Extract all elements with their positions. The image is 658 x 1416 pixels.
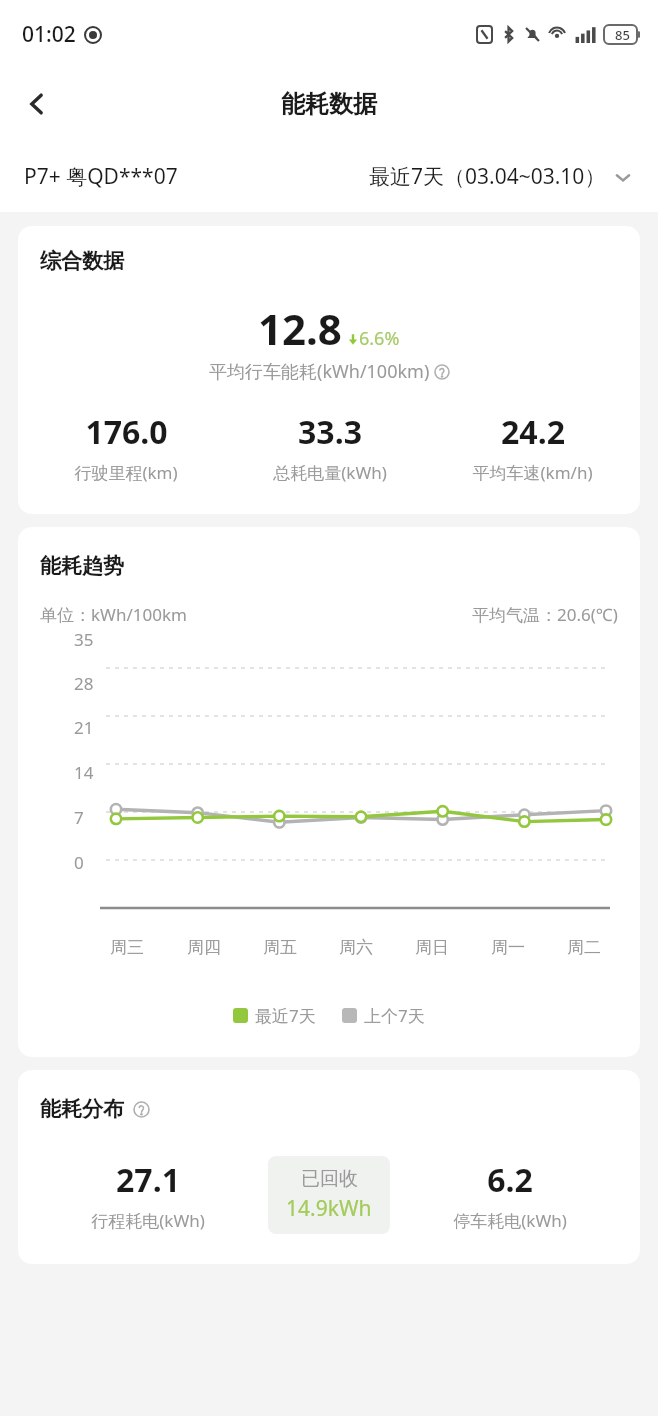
button[interactable]: 6.2 bbox=[390, 1158, 630, 1232]
staticText: 行程耗电(kWh) bbox=[91, 1209, 205, 1232]
staticText: 周日 bbox=[415, 937, 449, 958]
button[interactable]: 已回收 bbox=[268, 1156, 390, 1234]
staticText: 周一 bbox=[491, 937, 525, 958]
staticText: 14.9kWh bbox=[286, 1194, 372, 1223]
staticText: 6.6% bbox=[359, 326, 400, 351]
staticText: 14 bbox=[74, 761, 94, 784]
button[interactable]: 27.1 bbox=[28, 1158, 268, 1232]
staticText: 周四 bbox=[187, 937, 221, 958]
staticText: 周六 bbox=[339, 937, 373, 958]
button[interactable]: 176.0 bbox=[24, 410, 228, 484]
staticText: 35 bbox=[74, 628, 94, 651]
button[interactable]: P7+ 粤QD***07 bbox=[24, 162, 178, 191]
staticText: 已回收 bbox=[301, 1167, 358, 1191]
button[interactable]: Back bbox=[10, 77, 64, 131]
staticText: 33.3 bbox=[298, 410, 362, 454]
staticText: 7 bbox=[74, 806, 84, 829]
staticText: 能耗趋势 bbox=[40, 553, 124, 579]
staticText: 6.2 bbox=[487, 1158, 533, 1202]
staticText: 12.8 bbox=[258, 300, 342, 357]
staticText: 01:02 bbox=[22, 20, 76, 49]
staticText: 85 bbox=[615, 26, 630, 44]
staticText: 平均车速(km/h) bbox=[472, 461, 593, 484]
button[interactable]: 24.2 bbox=[431, 410, 634, 484]
button[interactable]: 最近7天 bbox=[233, 1004, 316, 1027]
button[interactable]: 33.3 bbox=[228, 410, 431, 484]
staticText: 176.0 bbox=[85, 410, 168, 454]
staticText: 最近7天 bbox=[255, 1004, 316, 1027]
staticText: 单位：kWh/100km bbox=[40, 603, 187, 626]
staticText: 总耗电量(kWh) bbox=[273, 461, 387, 484]
staticText: 0 bbox=[74, 851, 84, 874]
staticText: 周五 bbox=[263, 937, 297, 958]
staticText: 能耗数据 bbox=[281, 89, 377, 119]
button[interactable]: 上个7天 bbox=[342, 1004, 425, 1027]
staticText: 行驶里程(km) bbox=[74, 461, 178, 484]
staticText: 停车耗电(kWh) bbox=[453, 1209, 567, 1232]
staticText: 28 bbox=[74, 672, 94, 695]
staticText: 周二 bbox=[567, 937, 601, 958]
staticText: 综合数据 bbox=[40, 248, 124, 274]
staticText: 能耗分布 bbox=[40, 1096, 124, 1122]
staticText: 平均行车能耗(kWh/100km) bbox=[209, 359, 430, 384]
staticText: 24.2 bbox=[501, 410, 565, 454]
staticText: 平均气温：20.6(℃) bbox=[472, 603, 618, 626]
staticText: 上个7天 bbox=[364, 1004, 425, 1027]
button[interactable]: 最近7天（03.04~03.10） bbox=[369, 162, 634, 191]
staticText: 21 bbox=[74, 716, 94, 739]
staticText: 周三 bbox=[110, 937, 144, 958]
staticText: 27.1 bbox=[116, 1158, 180, 1202]
staticText: 最近7天（03.04~03.10） bbox=[369, 162, 606, 191]
